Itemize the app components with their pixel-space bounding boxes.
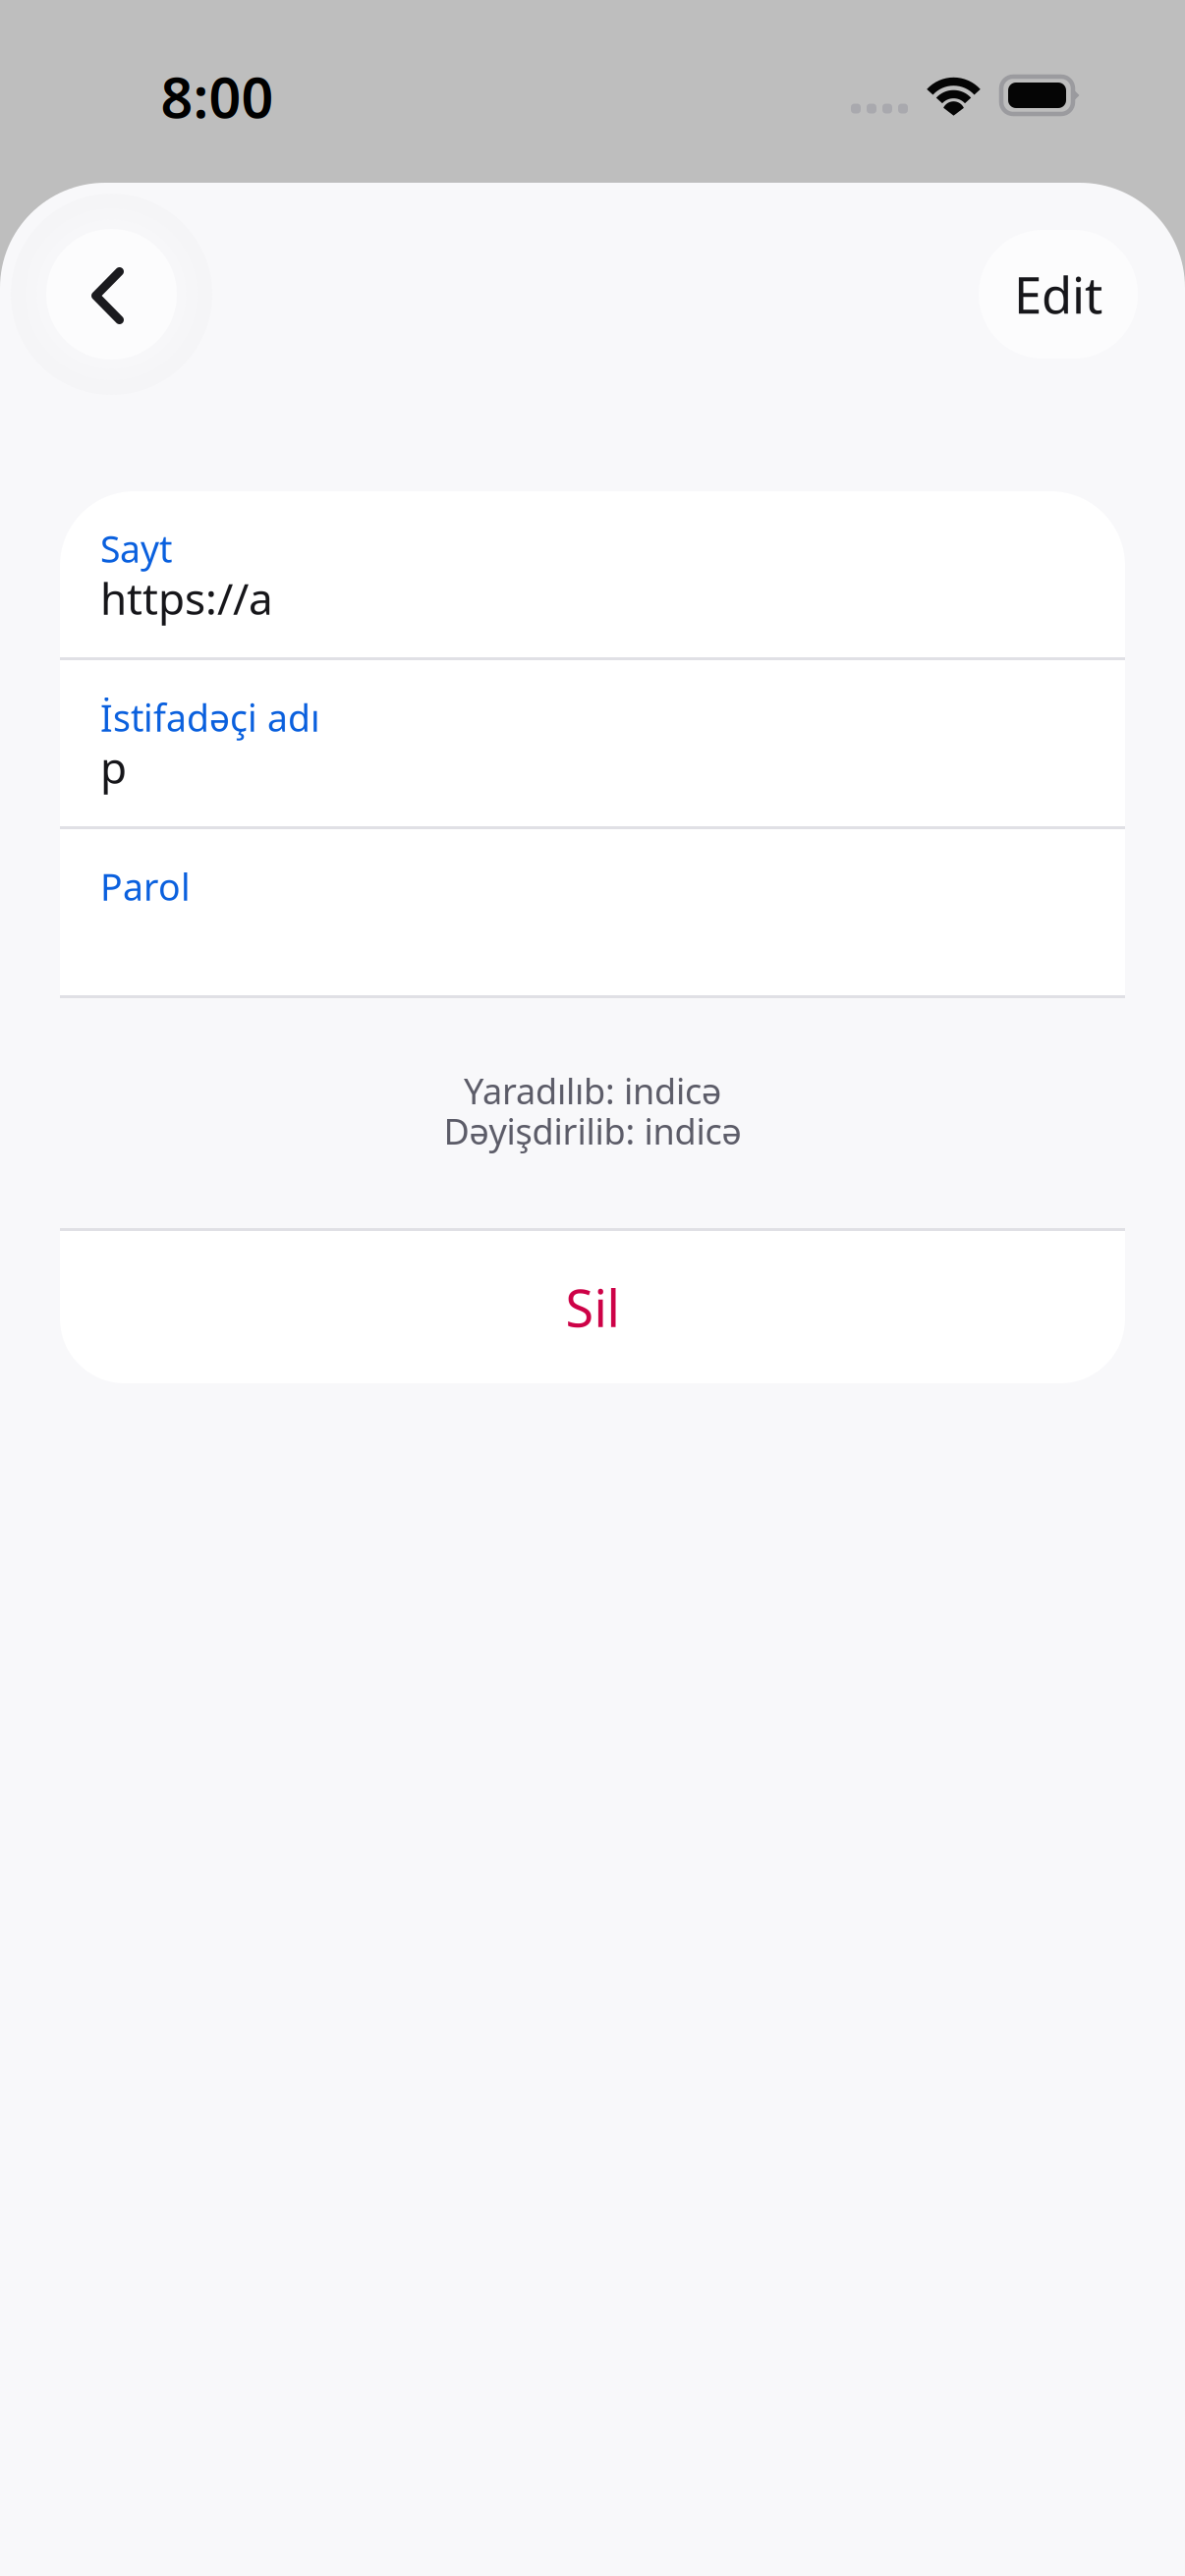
button[interactable]: Parol (60, 829, 1125, 995)
staticText: Sil (565, 1273, 620, 1341)
button[interactable]: Back (46, 229, 177, 360)
staticText: Parol (100, 862, 191, 911)
staticText: Yaradılıb: indicə (464, 1067, 721, 1114)
button[interactable]: Sil (60, 1228, 1125, 1383)
staticText: Sayt (100, 524, 172, 573)
staticText: Dəyişdirilib: indicə (444, 1107, 741, 1154)
button[interactable]: Sayt (60, 491, 1125, 657)
button[interactable]: Edit (979, 230, 1138, 359)
staticText: İstifadəçi adı (100, 693, 320, 742)
staticText: Edit (1014, 261, 1102, 327)
button[interactable]: İstifadəçi adı (60, 660, 1125, 826)
staticText: https://a (100, 569, 273, 627)
staticText: p (100, 738, 127, 796)
staticText: 8:00 (161, 59, 274, 134)
